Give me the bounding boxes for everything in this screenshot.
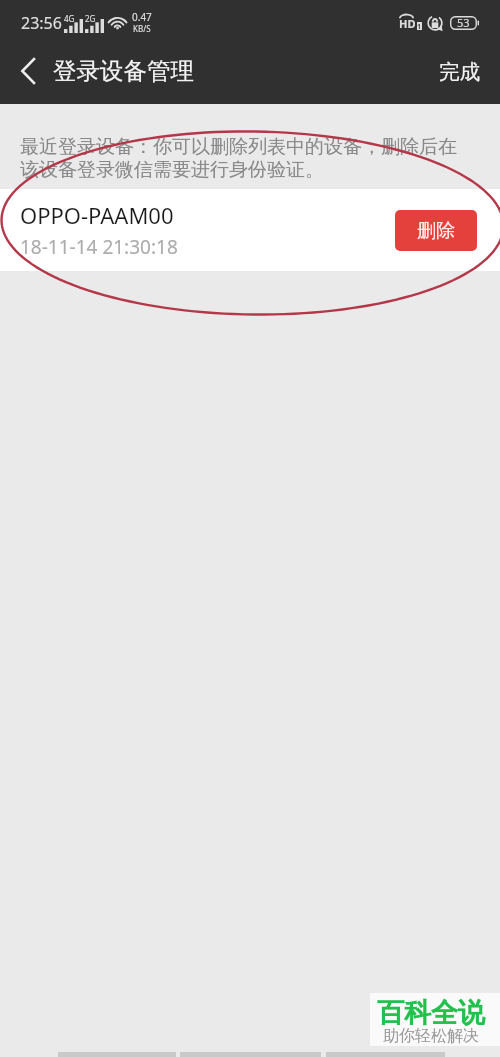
- staticText: 删除: [417, 219, 455, 243]
- staticText: 助你轻松解决: [383, 1026, 479, 1045]
- staticText: 完成: [439, 59, 480, 85]
- staticText: 53: [457, 15, 470, 30]
- staticText: 18-11-14 21:30:18: [20, 234, 178, 260]
- staticText: 0.47: [132, 10, 152, 24]
- staticText: 百科全说: [377, 996, 485, 1030]
- button[interactable]: Back: [0, 44, 46, 104]
- staticText: 登录设备管理: [53, 56, 194, 86]
- button[interactable]: 完成: [423, 49, 500, 99]
- staticText: 2G: [85, 13, 96, 24]
- staticText: OPPO-PAAM00: [20, 200, 174, 230]
- staticText: 23:56: [21, 12, 62, 34]
- staticText: 1: [417, 22, 422, 30]
- staticText: HD: [399, 16, 416, 31]
- staticText: KB/S: [133, 23, 151, 34]
- staticText: 最近登录设备：你可以删除列表中的设备，删除后在该设备登录微信需要进行身份验证。: [20, 135, 468, 181]
- button[interactable]: 删除: [395, 210, 477, 251]
- button[interactable]: OPPO-PAAM00: [0, 189, 500, 271]
- staticText: 4G: [64, 13, 75, 24]
